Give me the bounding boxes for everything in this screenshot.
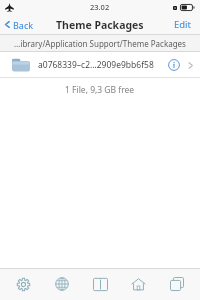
staticText: 23.02 xyxy=(90,2,110,12)
staticText: Theme Packages xyxy=(56,18,144,32)
staticText: 1 File, 9,3 GB free xyxy=(65,84,135,96)
button[interactable]: Edit xyxy=(166,14,200,35)
button[interactable]: Back xyxy=(0,14,52,35)
staticText: a0768339–c2…2909e9bb6f58 xyxy=(38,59,165,71)
button[interactable]: Bookmarks xyxy=(85,269,115,299)
staticText: Back xyxy=(13,19,34,31)
button[interactable]: Settings xyxy=(8,269,38,299)
button[interactable]: More Info xyxy=(165,56,183,74)
button[interactable]: Tabs xyxy=(162,269,192,299)
button[interactable]: a0768339–c2…2909e9bb6f58 xyxy=(0,52,200,78)
staticText: …ibrary/Application Support/Theme Packag… xyxy=(3,38,197,49)
button[interactable]: Browser xyxy=(47,269,77,299)
button[interactable]: Home xyxy=(123,269,153,299)
staticText: Edit xyxy=(174,18,192,31)
